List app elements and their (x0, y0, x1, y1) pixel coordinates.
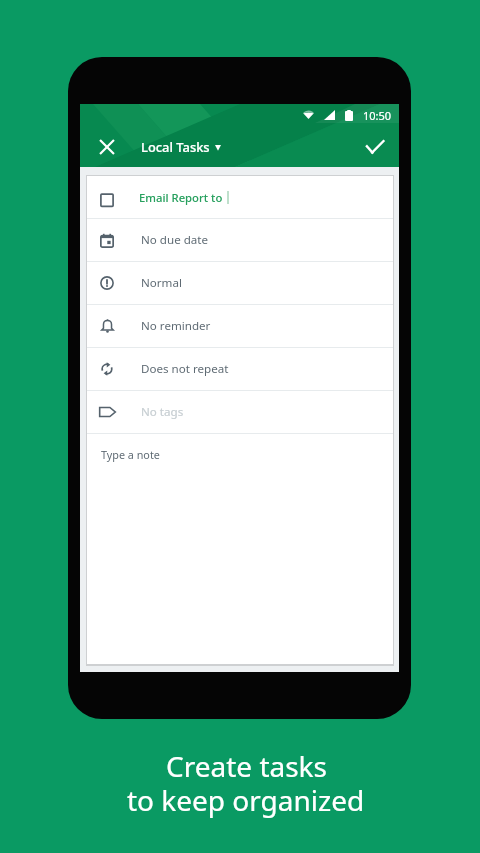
button[interactable]: No tags (87, 391, 393, 433)
button[interactable]: Save (350, 126, 399, 167)
staticText: Normal (141, 275, 182, 291)
staticText: Type a note (101, 447, 160, 462)
button[interactable]: Local Tasks (141, 138, 221, 156)
button[interactable]: Does not repeat (87, 348, 393, 390)
button[interactable]: No reminder (87, 305, 393, 347)
staticText: No due date (141, 232, 209, 248)
staticText: No reminder (141, 318, 211, 334)
staticText: Email Report to (139, 190, 223, 205)
staticText: to keep organized (127, 781, 365, 819)
button[interactable]: Email Report to (87, 176, 393, 218)
button[interactable]: No due date (87, 219, 393, 261)
staticText: Create tasks (166, 747, 327, 785)
staticText: No tags (141, 404, 184, 420)
button[interactable]: Normal (87, 262, 393, 304)
staticText: 10:50 (363, 108, 392, 123)
staticText: Does not repeat (141, 361, 229, 377)
staticText: Local Tasks (141, 138, 210, 156)
button[interactable]: Close (80, 126, 133, 167)
